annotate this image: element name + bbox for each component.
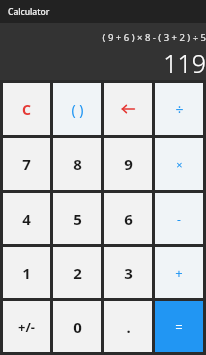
staticText: C xyxy=(22,100,31,119)
staticText: ( ) xyxy=(71,100,84,119)
button[interactable]: Backspace xyxy=(104,83,152,135)
button[interactable]: 2 xyxy=(53,247,101,298)
staticText: 4 xyxy=(22,209,31,229)
button[interactable]: +/- xyxy=(3,301,50,352)
button[interactable]: 6 xyxy=(104,193,152,244)
staticText: + xyxy=(175,264,183,282)
staticText: ( 9 + 6 ) × 8 - ( 3 + 2 ) ÷ 5 xyxy=(102,31,206,44)
staticText: × xyxy=(176,157,183,172)
staticText: 7 xyxy=(22,154,31,174)
button[interactable]: 0 xyxy=(53,301,101,352)
button[interactable]: 4 xyxy=(3,193,50,244)
button[interactable]: × xyxy=(155,138,203,190)
button[interactable]: ÷ xyxy=(155,83,203,135)
staticText: 9 xyxy=(124,154,133,174)
button[interactable]: . xyxy=(104,301,152,352)
button[interactable]: = xyxy=(155,301,203,352)
staticText: . xyxy=(126,317,131,337)
staticText: 6 xyxy=(124,209,133,229)
button[interactable]: 5 xyxy=(53,193,101,244)
button[interactable]: 7 xyxy=(3,138,50,190)
button[interactable]: 8 xyxy=(53,138,101,190)
button[interactable]: - xyxy=(155,193,203,244)
staticText: 8 xyxy=(73,154,82,174)
button[interactable]: 1 xyxy=(3,247,50,298)
staticText: 119 xyxy=(163,46,206,80)
staticText: 2 xyxy=(73,263,82,283)
button[interactable]: ( ) xyxy=(53,83,101,135)
staticText: 0 xyxy=(73,317,82,337)
staticText: 3 xyxy=(124,263,133,283)
button[interactable]: 3 xyxy=(104,247,152,298)
staticText: +/- xyxy=(18,318,35,336)
staticText: Calculator xyxy=(8,6,50,18)
staticText: - xyxy=(177,211,181,227)
staticText: = xyxy=(175,318,183,336)
button[interactable]: 9 xyxy=(104,138,152,190)
button[interactable]: + xyxy=(155,247,203,298)
staticText: 1 xyxy=(22,263,31,283)
staticText: 5 xyxy=(73,209,82,229)
button[interactable]: C xyxy=(3,83,50,135)
staticText: ÷ xyxy=(175,100,184,119)
